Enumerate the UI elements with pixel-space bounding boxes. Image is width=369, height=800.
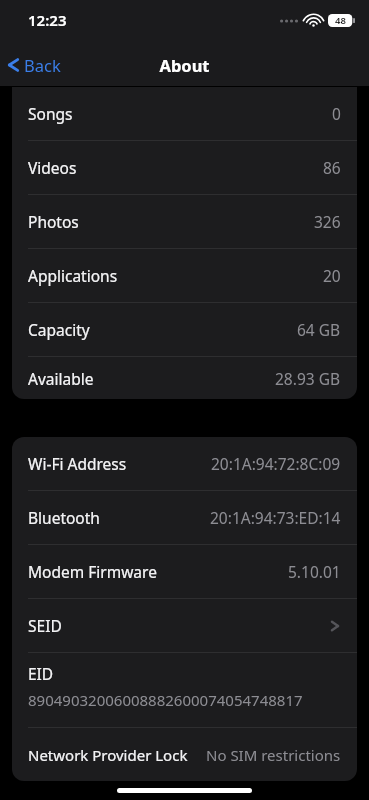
staticText: 12:23 <box>28 10 67 30</box>
button[interactable]: Applications <box>12 249 357 302</box>
button[interactable]: Network Provider Lock <box>12 728 357 781</box>
button[interactable]: Bluetooth <box>12 491 357 544</box>
button[interactable]: Videos <box>12 141 357 194</box>
button[interactable]: Back <box>0 48 71 82</box>
staticText: 64 GB <box>297 319 341 340</box>
button[interactable]: Available <box>12 357 357 399</box>
staticText: 5.10.01 <box>288 561 341 582</box>
staticText: Network Provider Lock <box>28 745 188 765</box>
button[interactable]: SEID details <box>12 599 357 652</box>
staticText: Available <box>28 368 94 389</box>
button[interactable]: Photos <box>12 195 357 248</box>
staticText: 89049032006008882600074054748817 <box>28 690 303 710</box>
button[interactable]: Capacity <box>12 303 357 356</box>
staticText: 326 <box>314 211 341 232</box>
button[interactable]: EID <box>12 653 357 727</box>
staticText: No SIM restrictions <box>206 745 341 765</box>
staticText: Videos <box>28 157 77 178</box>
staticText: About <box>159 54 210 76</box>
staticText: Applications <box>28 265 118 286</box>
staticText: Photos <box>28 211 79 232</box>
staticText: 20 <box>323 265 341 286</box>
staticText: EID <box>28 663 54 684</box>
staticText: Modem Firmware <box>28 561 157 582</box>
staticText: Songs <box>28 103 73 124</box>
staticText: 48 <box>335 14 346 27</box>
button[interactable]: Wi-Fi Address <box>12 437 357 490</box>
button[interactable]: Songs <box>12 87 357 140</box>
staticText: SEID <box>28 615 62 636</box>
staticText: 20:1A:94:73:ED:14 <box>210 507 341 528</box>
staticText: Back <box>24 54 61 76</box>
staticText: Wi-Fi Address <box>28 453 127 474</box>
staticText: 86 <box>323 157 341 178</box>
staticText: Bluetooth <box>28 507 100 528</box>
staticText: 20:1A:94:72:8C:09 <box>211 453 341 474</box>
staticText: Capacity <box>28 319 90 340</box>
staticText: 28.93 GB <box>275 368 341 389</box>
button[interactable]: Modem Firmware <box>12 545 357 598</box>
staticText: 0 <box>332 103 341 124</box>
